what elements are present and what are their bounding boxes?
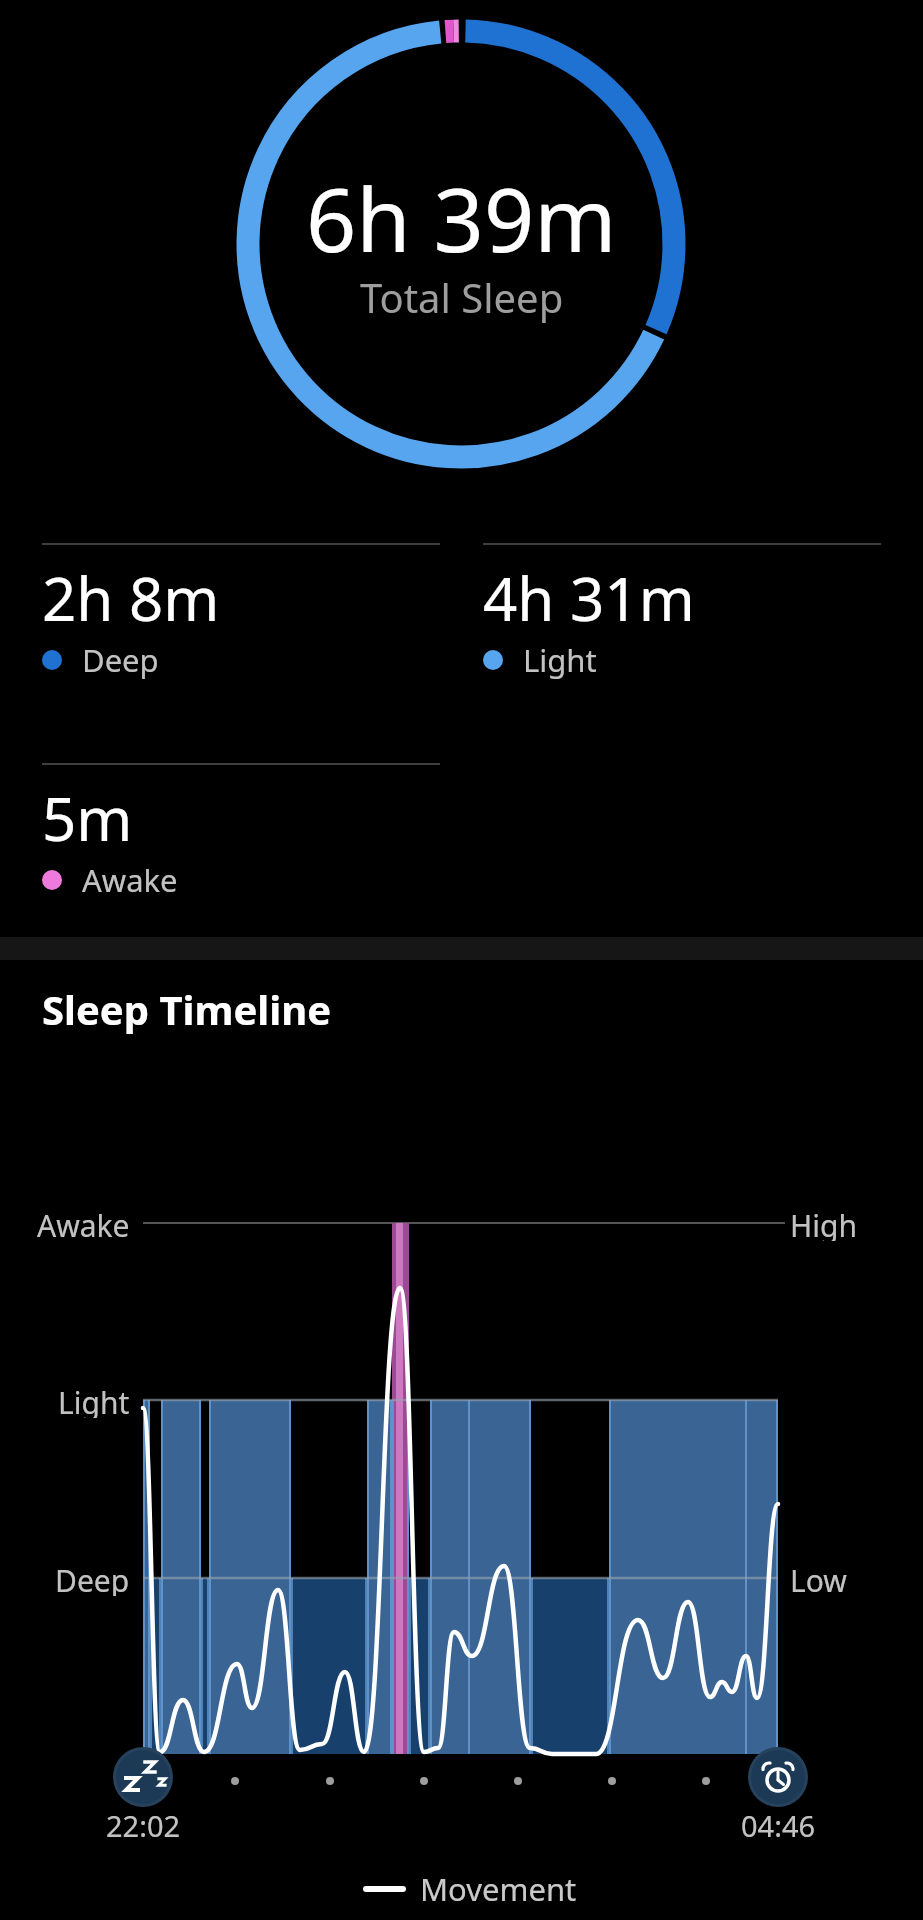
staticText: Deep	[55, 1560, 130, 1596]
staticText: 6h 39m	[306, 158, 617, 278]
staticText: 04:46	[741, 1806, 816, 1845]
staticText: Total Sleep	[360, 270, 564, 324]
staticText: Low	[790, 1560, 847, 1596]
staticText: Awake	[82, 859, 178, 901]
staticText: 22:02	[106, 1806, 181, 1845]
button[interactable]: 4h 31m	[483, 543, 881, 681]
button[interactable]	[750, 1749, 806, 1805]
staticText: Movement	[420, 1868, 577, 1910]
staticText: Light	[58, 1382, 130, 1418]
button[interactable]: Sleep Timeline	[42, 982, 332, 1036]
staticText: 5m	[42, 777, 133, 859]
staticText: Sleep Timeline	[42, 982, 332, 1036]
staticText: Light	[523, 639, 597, 681]
button[interactable]: 5m	[42, 763, 440, 901]
staticText: High	[790, 1205, 857, 1241]
button[interactable]: 2h 8m	[42, 543, 440, 681]
staticText: Deep	[82, 639, 159, 681]
button[interactable]: Movement	[363, 1868, 577, 1910]
staticText: 4h 31m	[483, 557, 695, 639]
staticText: 2h 8m	[42, 557, 220, 639]
staticText: Awake	[37, 1205, 130, 1241]
button[interactable]	[115, 1749, 171, 1805]
